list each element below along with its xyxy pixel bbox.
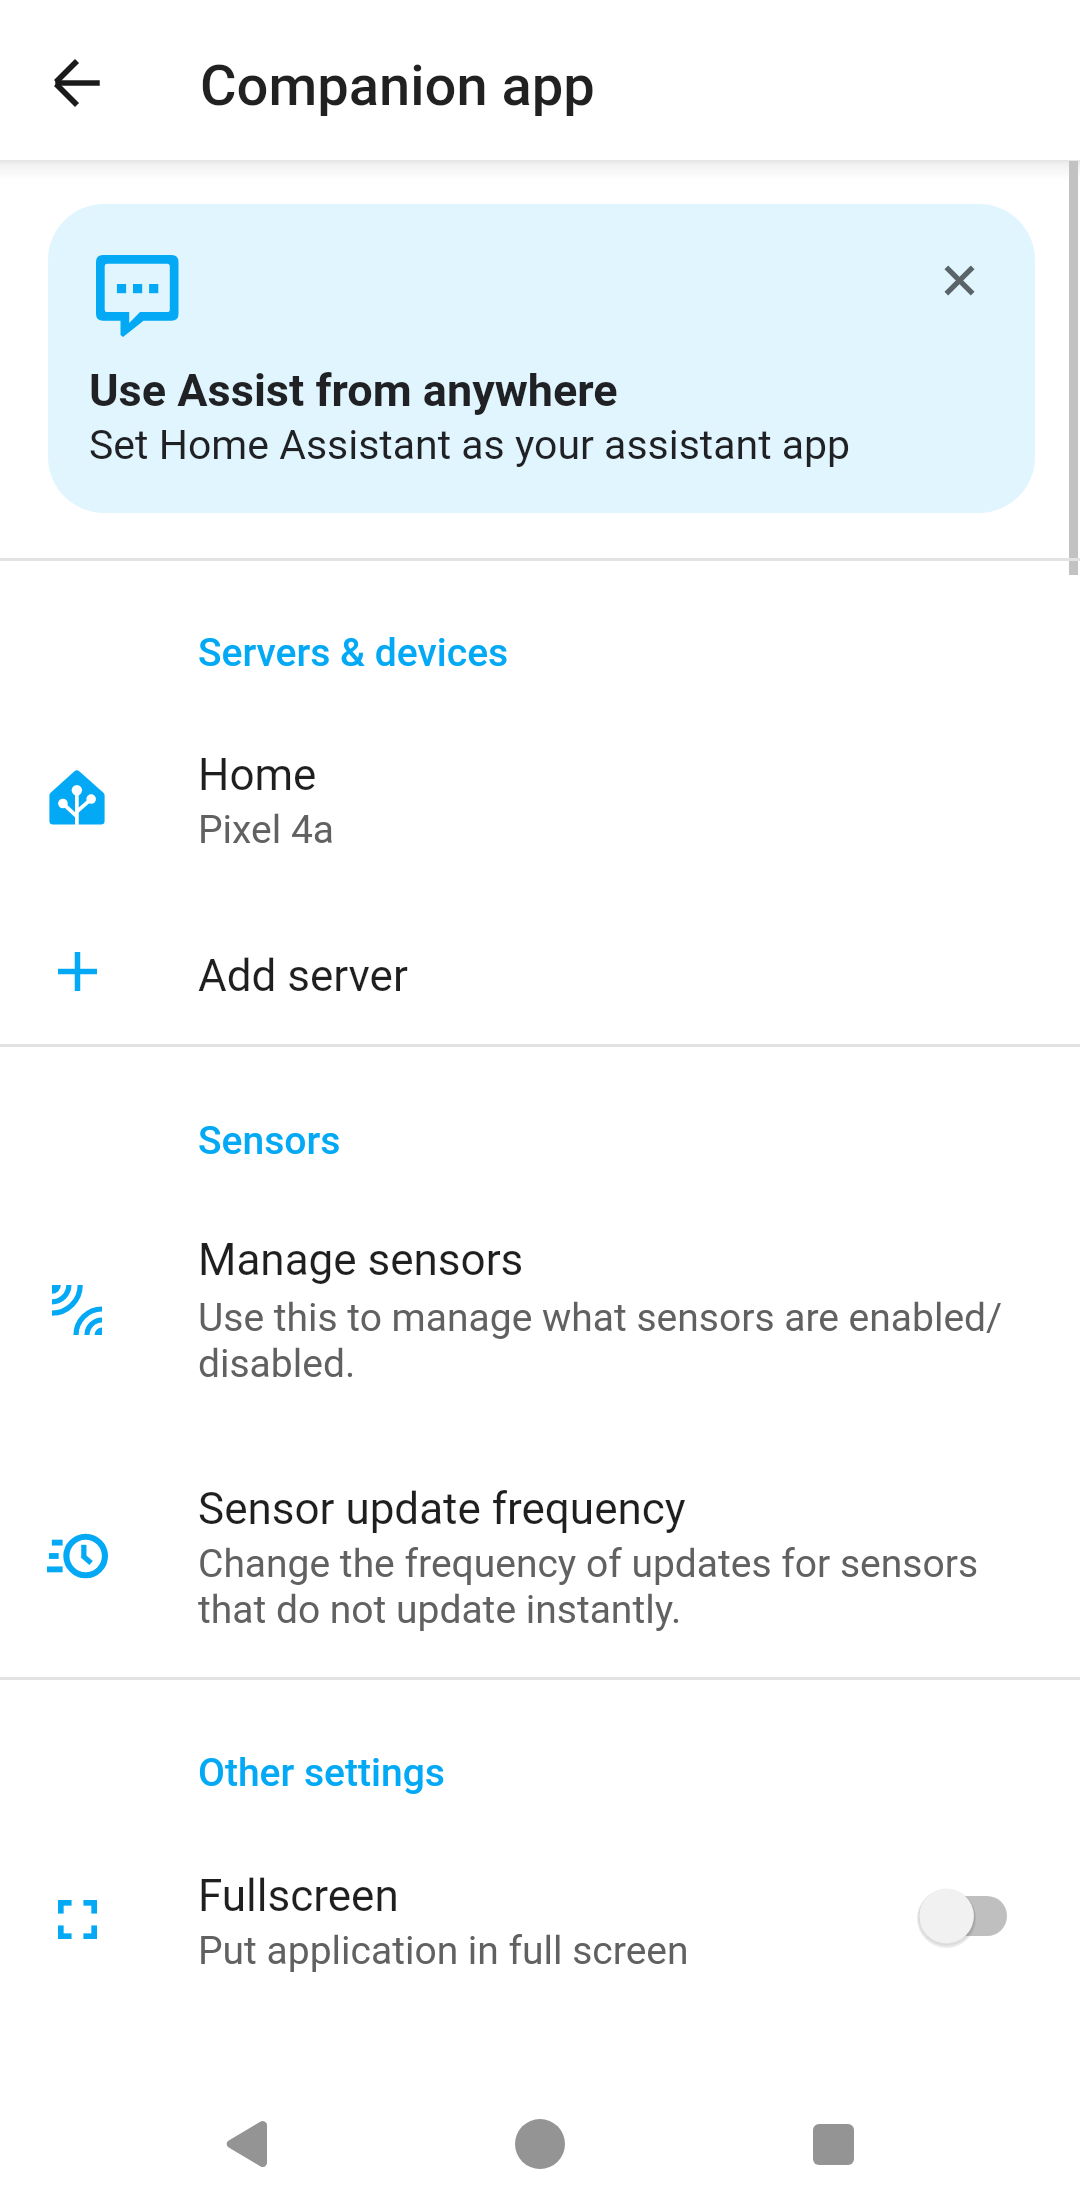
staticText: Use Assist from anywhere (89, 364, 618, 417)
staticText: Home (198, 749, 317, 801)
button[interactable]: Home (490, 2094, 590, 2194)
staticText: Servers & devices (198, 630, 509, 676)
staticText: Put application in full screen (198, 1928, 689, 1974)
staticText: Add server (198, 950, 408, 1002)
button[interactable]: Home (0, 705, 1080, 870)
button[interactable]: Sensor update frequency (0, 1444, 1080, 1648)
button[interactable]: Navigate up (21, 26, 133, 138)
staticText: Other settings (198, 1750, 445, 1796)
staticText: Change the frequency of updates for sens… (198, 1541, 979, 1633)
button[interactable]: Dismiss (48, 204, 1035, 513)
staticText: Fullscreen (198, 1870, 399, 1922)
button[interactable]: Recent apps (783, 2094, 883, 2194)
staticText: Companion app (200, 53, 595, 119)
staticText: Sensor update frequency (198, 1483, 686, 1535)
staticText: Sensors (198, 1118, 341, 1164)
staticText: Use this to manage what sensors are enab… (198, 1295, 1003, 1387)
button[interactable]: Toggle fullscreen (898, 1861, 1028, 1971)
staticText: Set Home Assistant as your assistant app (89, 421, 851, 469)
button[interactable]: Dismiss (911, 232, 1007, 328)
button[interactable]: Back (196, 2094, 296, 2194)
button[interactable]: Add server (0, 920, 1080, 1030)
staticText: Pixel 4a (198, 807, 335, 853)
button[interactable]: Manage sensors (0, 1195, 1080, 1400)
button[interactable]: Fullscreen (0, 1840, 1080, 2000)
staticText: Manage sensors (198, 1234, 524, 1286)
